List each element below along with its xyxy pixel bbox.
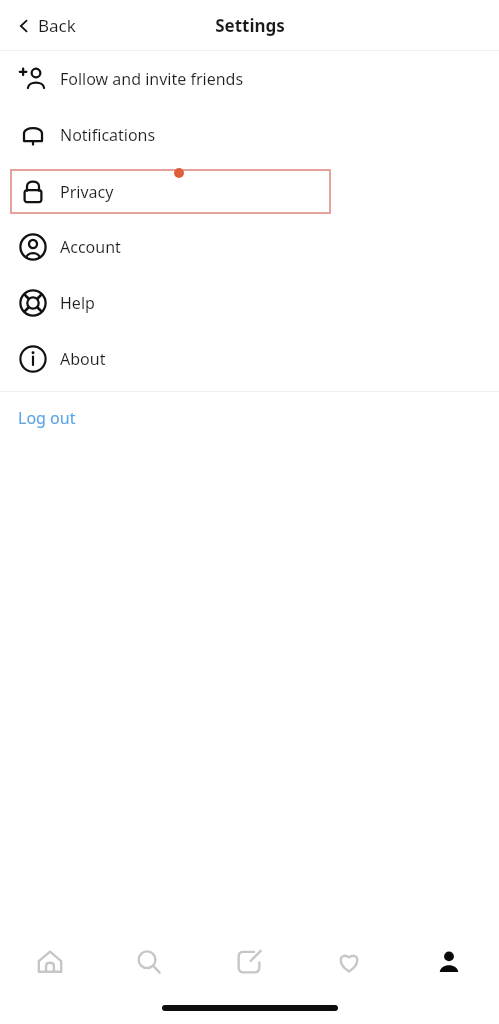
button[interactable]: Notifications (0, 107, 499, 163)
button[interactable]: Back (12, 8, 80, 43)
button[interactable]: Activity (299, 930, 399, 994)
staticText: Notifications (60, 124, 156, 146)
button[interactable]: Search (99, 930, 199, 994)
button[interactable]: Home (0, 930, 99, 994)
button[interactable]: Compose (199, 930, 299, 994)
staticText: Follow and invite friends (60, 68, 244, 90)
button[interactable]: Privacy (11, 170, 330, 213)
button[interactable]: Profile (399, 930, 499, 994)
staticText: Settings (215, 14, 285, 37)
staticText: About (60, 348, 106, 370)
button[interactable]: Log out (0, 392, 499, 444)
button[interactable]: Follow and invite friends (0, 51, 499, 107)
staticText: Help (60, 292, 95, 314)
button[interactable]: About (0, 331, 499, 387)
button[interactable]: Account (0, 219, 499, 275)
button[interactable]: Help (0, 275, 499, 331)
staticText: Back (38, 14, 76, 37)
staticText: Privacy (60, 181, 114, 203)
staticText: Log out (18, 407, 76, 429)
staticText: Account (60, 236, 121, 258)
